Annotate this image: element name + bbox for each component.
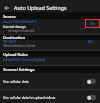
- staticText: Internal storage: [3, 25, 26, 29]
- staticText: Use cellular data to upload videos: [3, 95, 87, 99]
- staticText: Auto Upload Settings: [14, 4, 67, 11]
- staticText: /Multimedia/Auto Upload: [3, 44, 36, 48]
- button[interactable]: Toggle: [87, 79, 96, 84]
- button[interactable]: Use cellular data to upload videos: [0, 90, 100, 103]
- staticText: Upload Rules: Scan and upload: [3, 58, 45, 62]
- staticText: Edit: [90, 22, 96, 26]
- staticText: Source: [3, 14, 16, 19]
- button[interactable]: Toggle: [87, 95, 96, 100]
- staticText: Destination: [3, 35, 26, 40]
- button[interactable]: [0, 40, 100, 50]
- button[interactable]: [0, 57, 100, 65]
- button[interactable]: [0, 19, 100, 34]
- staticText: Upload Rules: [3, 52, 28, 57]
- staticText: General Settings: [3, 67, 35, 72]
- button[interactable]: Back: [1, 2, 13, 14]
- staticText: TW-78371: [3, 40, 17, 44]
- button[interactable]: Edit: [88, 40, 94, 44]
- button[interactable]: Edit: [85, 19, 100, 28]
- staticText: Use cellular data: [3, 79, 87, 83]
- staticText: /storage/emulated/0: [8, 29, 35, 33]
- staticText: Source Paths Selected (1): [3, 20, 37, 24]
- button[interactable]: Use cellular data: [0, 73, 100, 89]
